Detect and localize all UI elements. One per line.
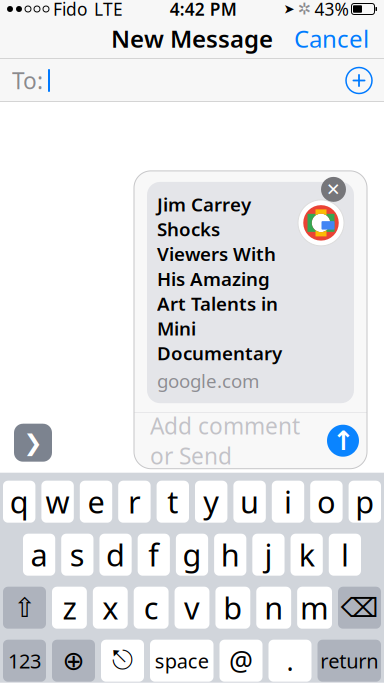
button[interactable]: b [215,587,250,629]
staticText: p [355,481,374,522]
button[interactable]: return [317,640,381,682]
button[interactable]: period [268,640,311,682]
button[interactable]: Numbers [3,640,46,682]
staticText: m [300,587,329,628]
staticText: 43% [314,0,348,20]
button[interactable]: y [195,481,227,523]
button[interactable]: l [329,534,361,576]
staticText: h [221,534,240,575]
staticText: c [144,587,159,628]
button[interactable]: m [297,587,332,629]
button[interactable]: g [176,534,208,576]
button[interactable]: o [310,481,343,523]
button[interactable]: Delete [338,587,381,629]
button[interactable]: x [93,587,128,629]
staticText: q [10,481,29,522]
button[interactable]: h [214,534,246,576]
button[interactable]: v [175,587,209,629]
staticText: Add comment or Send [150,411,300,471]
button[interactable]: More options [14,171,52,462]
button[interactable]: e [80,481,112,523]
staticText: 123 [8,647,41,674]
button[interactable]: To: [0,59,384,102]
staticText: ↑ [332,426,354,456]
staticText: ➤ [283,1,294,16]
button[interactable]: c [134,587,169,629]
staticText: e [87,481,104,522]
staticText: To: [12,65,43,95]
staticText: ⎋ [112,648,133,674]
staticText: w [46,481,70,522]
staticText: LTE [94,0,123,20]
button[interactable]: f [138,534,170,576]
staticText: g [182,534,201,575]
staticText: ⊕ [62,646,84,676]
staticText: @ [229,643,253,678]
button[interactable]: r [118,481,151,523]
staticText: u [240,481,259,522]
button[interactable]: i [272,481,304,523]
staticText: x [102,587,118,628]
staticText: j [264,534,272,575]
staticText: k [299,534,315,575]
staticText: ✕ [326,179,341,199]
staticText: s [70,534,85,575]
staticText: b [223,587,242,628]
staticText: z [62,587,76,628]
staticText: 4:42 PM [170,0,237,20]
staticText: n [264,587,283,628]
button[interactable]: k [291,534,323,576]
button[interactable]: Dictation [101,640,144,682]
button[interactable]: space [150,640,213,682]
staticText: ⇧ [13,593,35,623]
button[interactable]: Add comment or Send [134,413,367,469]
staticText: a [31,534,48,575]
button[interactable]: q [3,481,35,523]
staticText: google.com [157,368,259,393]
staticText: space [155,647,209,674]
button[interactable]: d [99,534,132,576]
button[interactable]: a [23,534,55,576]
button[interactable]: at [219,640,262,682]
staticText: return [320,647,378,674]
staticText: Jim Carrey Shocks Viewers With His Amazi… [157,192,282,365]
staticText: Fido [53,0,87,20]
button[interactable]: Shift [3,587,46,629]
button[interactable]: t [157,481,189,523]
staticText: ❯ [23,430,42,455]
staticText: d [106,534,125,575]
staticText: New Message [111,23,273,54]
staticText: ⌫ [340,593,378,623]
staticText: y [203,481,219,522]
button[interactable]: Next keyboard [52,640,95,682]
staticText: i [284,481,292,522]
staticText: ✲ [297,0,310,18]
button[interactable]: j [252,534,284,576]
staticText: . [286,643,293,678]
button[interactable]: Jim Carrey Shocks Viewers With His Amazi… [134,171,367,412]
button[interactable]: p [349,481,381,523]
staticText: v [184,587,200,628]
button[interactable]: z [52,587,87,629]
staticText: o [317,481,336,522]
staticText: Cancel [294,23,369,54]
button[interactable]: w [41,481,74,523]
staticText: r [128,481,141,522]
staticText: l [341,534,349,575]
button[interactable]: u [233,481,266,523]
button[interactable]: n [256,587,291,629]
button[interactable]: Cancel [284,17,379,60]
staticText: t [167,481,178,522]
staticText: f [148,534,159,575]
button[interactable]: Remove link preview [321,177,346,202]
button[interactable]: Send [327,425,359,457]
button[interactable]: s [61,534,93,576]
